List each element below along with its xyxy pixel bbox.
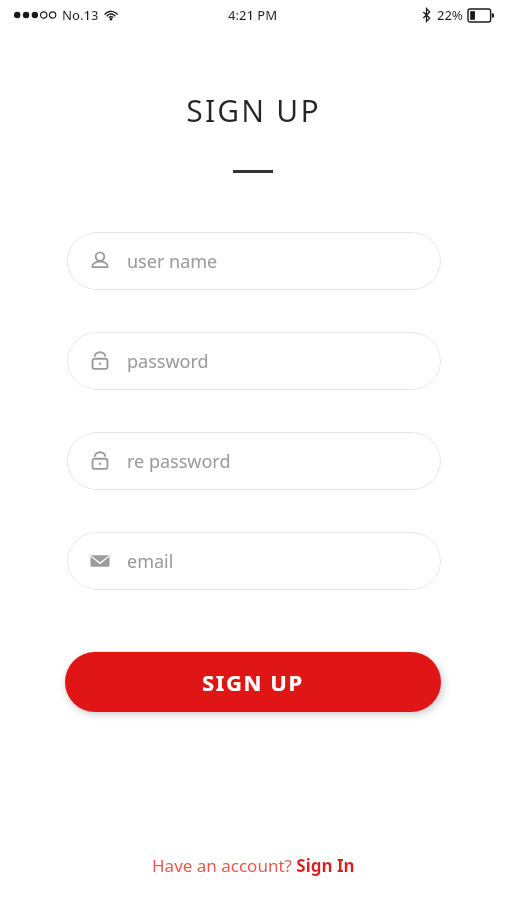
staticText: No.13 — [62, 6, 99, 24]
staticText: email — [127, 549, 174, 574]
button[interactable]: re password — [67, 432, 441, 490]
staticText: Have an account? Sign In — [152, 854, 355, 877]
staticText: 4:21 PM — [228, 6, 278, 24]
button[interactable]: user name — [67, 232, 441, 290]
staticText: SIGN UP — [202, 667, 304, 697]
staticText: user name — [127, 249, 218, 274]
button[interactable]: SIGN UP — [65, 652, 441, 712]
staticText: 22% — [437, 6, 463, 24]
staticText: re password — [127, 449, 231, 474]
button[interactable]: Have an account? Sign In — [144, 852, 363, 879]
staticText: SIGN UP — [186, 90, 321, 131]
button[interactable]: email — [67, 532, 441, 590]
staticText: password — [127, 349, 209, 374]
button[interactable]: password — [67, 332, 441, 390]
